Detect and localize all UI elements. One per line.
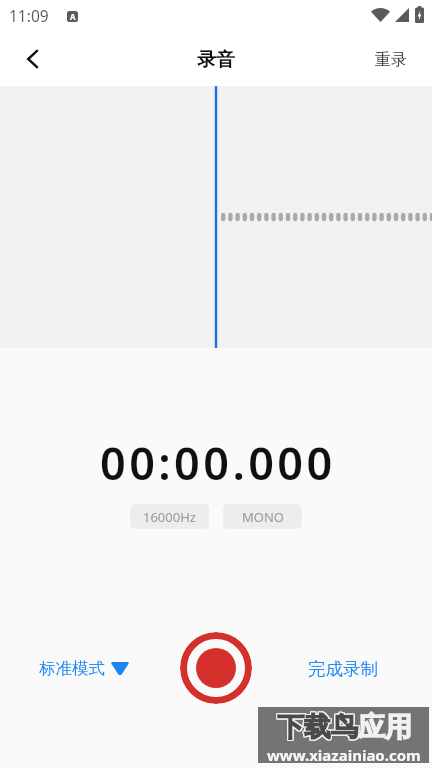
staticText: 下载鸟	[277, 711, 358, 745]
staticText: 下载鸟	[277, 709, 358, 743]
button[interactable]: 16000Hz	[130, 504, 209, 529]
button[interactable]: 标准模式	[31, 654, 138, 683]
button[interactable]: 完成录制	[302, 652, 384, 686]
staticText: 录音	[197, 48, 235, 72]
staticText: 重录	[375, 50, 407, 70]
staticText: 下载鸟	[276, 711, 357, 745]
staticText: MONO	[242, 508, 284, 526]
button[interactable]: MONO	[223, 504, 302, 529]
staticText: 下载鸟	[278, 710, 359, 744]
button[interactable]: Back	[6, 32, 59, 85]
staticText: 11:09	[9, 5, 49, 26]
button[interactable]: Record	[180, 632, 252, 704]
staticText: 标准模式	[39, 658, 105, 679]
staticText: 00:00.000	[100, 432, 336, 493]
staticText: 完成录制	[308, 658, 378, 680]
staticText: 下载鸟	[276, 709, 357, 743]
staticText: 应用	[358, 710, 412, 744]
staticText: 下载鸟	[278, 709, 359, 743]
staticText: 下载鸟	[276, 710, 357, 744]
staticText: 下载鸟	[278, 711, 359, 745]
staticText: 下载鸟	[277, 710, 358, 744]
staticText: www.xiazainiao.com	[267, 745, 421, 763]
staticText: A	[70, 11, 76, 22]
button[interactable]: 重录	[350, 33, 432, 86]
staticText: 16000Hz	[143, 508, 196, 526]
